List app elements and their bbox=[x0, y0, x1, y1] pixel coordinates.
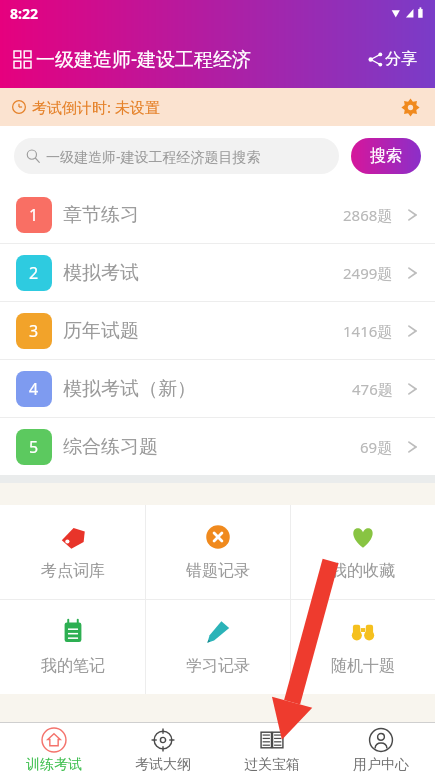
staticText: 2868题 bbox=[343, 205, 393, 225]
staticText: 3 bbox=[29, 320, 39, 342]
staticText: 考点词库 bbox=[41, 561, 105, 581]
staticText: 模拟考试 bbox=[63, 261, 139, 285]
staticText: 搜索 bbox=[370, 146, 402, 166]
button[interactable]: 5 bbox=[0, 418, 435, 475]
button[interactable]: 我的收藏 bbox=[291, 505, 435, 599]
button[interactable]: 搜索 bbox=[351, 138, 421, 174]
button[interactable]: 错题记录 bbox=[146, 505, 290, 599]
staticText: 一级建造师-建设工程经济 bbox=[36, 46, 252, 72]
button[interactable]: 用户中心 bbox=[326, 723, 435, 777]
staticText: 学习记录 bbox=[186, 656, 250, 676]
staticText: 错题记录 bbox=[186, 561, 250, 581]
staticText: 8:22 bbox=[10, 4, 38, 23]
staticText: 1416题 bbox=[343, 321, 393, 341]
staticText: 2 bbox=[29, 262, 39, 284]
staticText: 分享 bbox=[385, 49, 417, 69]
staticText: 5 bbox=[29, 436, 39, 458]
staticText: 历年试题 bbox=[63, 319, 139, 343]
staticText: 476题 bbox=[352, 379, 393, 399]
button[interactable]: 设置 bbox=[397, 94, 423, 120]
button[interactable]: 4 bbox=[0, 360, 435, 417]
staticText: 综合练习题 bbox=[63, 435, 158, 459]
button[interactable]: 考点词库 bbox=[0, 505, 145, 599]
staticText: 过关宝箱 bbox=[244, 756, 300, 774]
button[interactable]: 学习记录 bbox=[146, 600, 290, 694]
button[interactable]: 我的笔记 bbox=[0, 600, 145, 694]
button[interactable]: 随机十题 bbox=[291, 600, 435, 694]
button[interactable]: 分享 bbox=[364, 45, 421, 73]
button[interactable]: 过关宝箱 bbox=[217, 723, 326, 777]
staticText: 69题 bbox=[360, 437, 393, 457]
staticText: 4 bbox=[29, 378, 39, 400]
staticText: 2499题 bbox=[343, 263, 393, 283]
staticText: 随机十题 bbox=[331, 656, 395, 676]
staticText: 考试大纲 bbox=[135, 756, 191, 774]
button[interactable]: 3 bbox=[0, 302, 435, 359]
button[interactable]: 1 bbox=[0, 186, 435, 243]
button[interactable]: 一级建造师-建设工程经济题目搜索 bbox=[14, 138, 339, 174]
staticText: 考试倒计时: 未设置 bbox=[32, 97, 160, 117]
staticText: 1 bbox=[29, 204, 39, 226]
staticText: 我的笔记 bbox=[41, 656, 105, 676]
staticText: 训练考试 bbox=[26, 756, 82, 774]
button[interactable]: 考试大纲 bbox=[108, 723, 217, 777]
staticText: 一级建造师-建设工程经济题目搜索 bbox=[46, 147, 261, 166]
button[interactable]: 2 bbox=[0, 244, 435, 301]
staticText: 我的收藏 bbox=[331, 561, 395, 581]
button[interactable]: 考试倒计时: 未设置 bbox=[0, 88, 435, 126]
staticText: 用户中心 bbox=[353, 756, 409, 774]
staticText: 章节练习 bbox=[63, 203, 139, 227]
staticText: 模拟考试（新） bbox=[63, 377, 196, 401]
button[interactable]: 训练考试 bbox=[0, 723, 108, 777]
